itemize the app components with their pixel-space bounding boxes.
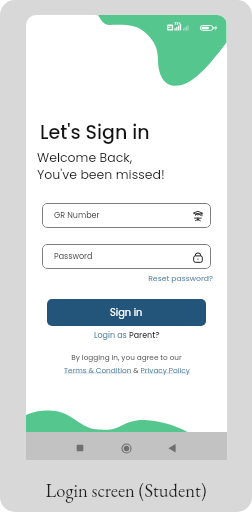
button[interactable]: Home — [114, 436, 138, 460]
button[interactable]: Terms & Condition & Privacy Policy — [64, 365, 190, 375]
staticText: Welcome Back, You've been missed! — [37, 149, 165, 184]
staticText: Password — [54, 251, 93, 262]
staticText: By logging in, you agree to our — [26, 352, 227, 362]
staticText: GR Number — [54, 210, 100, 221]
button[interactable]: Login as Parent? — [94, 330, 160, 341]
button[interactable]: Student account — [42, 203, 211, 228]
button[interactable]: Reset password? — [26, 273, 213, 284]
button[interactable]: Password — [42, 244, 211, 269]
staticText: Sign in — [110, 306, 143, 320]
staticText: Let's Sign in — [40, 119, 150, 146]
staticText: Login screen (Student) — [0, 478, 252, 502]
button[interactable]: Recents — [68, 436, 92, 460]
button[interactable]: Sign in — [47, 299, 206, 326]
button[interactable]: Back — [160, 436, 184, 460]
